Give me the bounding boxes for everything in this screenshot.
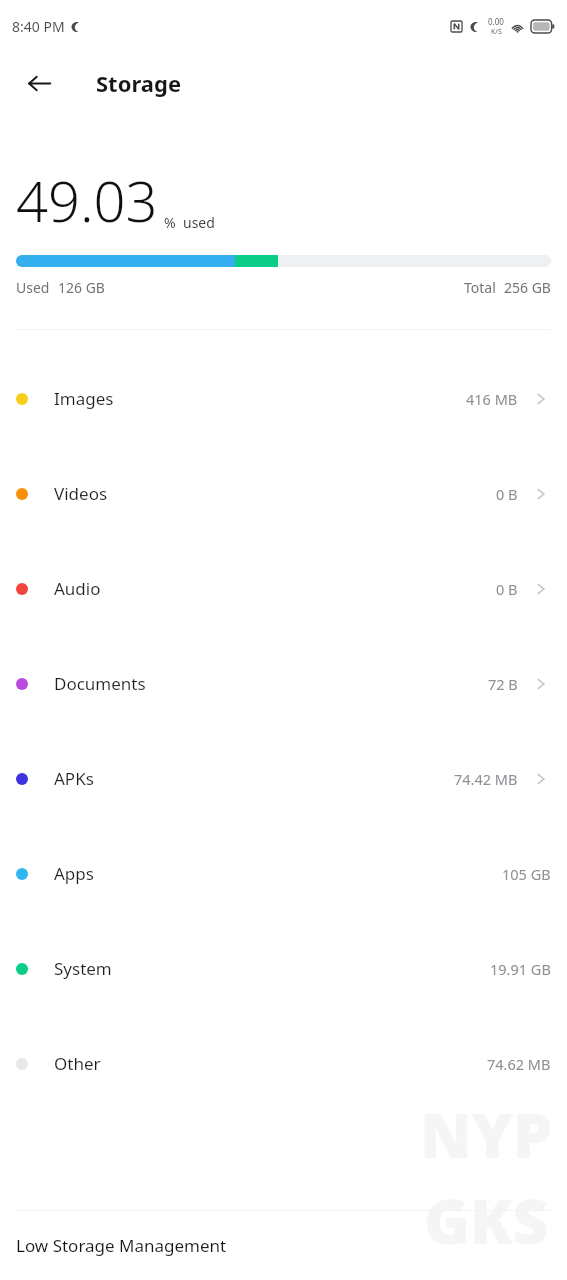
staticText: 0.00 — [488, 16, 504, 27]
staticText: NYP — [420, 1092, 553, 1176]
staticText: Other — [54, 1052, 101, 1075]
staticText: GKS — [424, 1178, 549, 1262]
button[interactable]: Low Storage Management — [0, 1211, 567, 1279]
staticText: 49.03 — [16, 162, 158, 238]
button[interactable]: APKs — [0, 731, 567, 826]
staticText: 105 GB — [502, 864, 551, 884]
button[interactable]: Videos — [0, 446, 567, 541]
staticText: Low Storage Management — [16, 1234, 227, 1257]
staticText: Used — [16, 278, 50, 297]
staticText: Videos — [54, 482, 108, 505]
staticText: 0 B — [496, 579, 518, 599]
staticText: APKs — [54, 767, 94, 790]
staticText: K/S — [491, 27, 502, 37]
button[interactable]: Images — [0, 351, 567, 446]
staticText: System — [54, 957, 112, 980]
staticText: % — [164, 213, 176, 232]
button[interactable]: Audio — [0, 541, 567, 636]
staticText: used — [183, 213, 215, 232]
staticText: 8:40 PM — [12, 17, 65, 36]
staticText: Audio — [54, 577, 101, 600]
staticText: Documents — [54, 672, 146, 695]
button[interactable]: Other — [0, 1016, 567, 1111]
staticText: Apps — [54, 862, 94, 885]
staticText: 416 MB — [466, 389, 518, 409]
staticText: Total — [464, 278, 496, 297]
staticText: 126 GB — [58, 278, 105, 297]
staticText: Images — [54, 387, 114, 410]
staticText: 19.91 GB — [490, 959, 551, 979]
button[interactable]: Back — [28, 60, 74, 106]
staticText: 74.62 MB — [487, 1054, 551, 1074]
button[interactable]: System — [0, 921, 567, 1016]
staticText: Storage — [96, 68, 182, 98]
staticText: 74.42 MB — [454, 769, 518, 789]
staticText: 256 GB — [504, 278, 551, 297]
staticText: 72 B — [488, 674, 518, 694]
button[interactable]: Documents — [0, 636, 567, 731]
staticText: 0 B — [496, 484, 518, 504]
button[interactable]: Apps — [0, 826, 567, 921]
